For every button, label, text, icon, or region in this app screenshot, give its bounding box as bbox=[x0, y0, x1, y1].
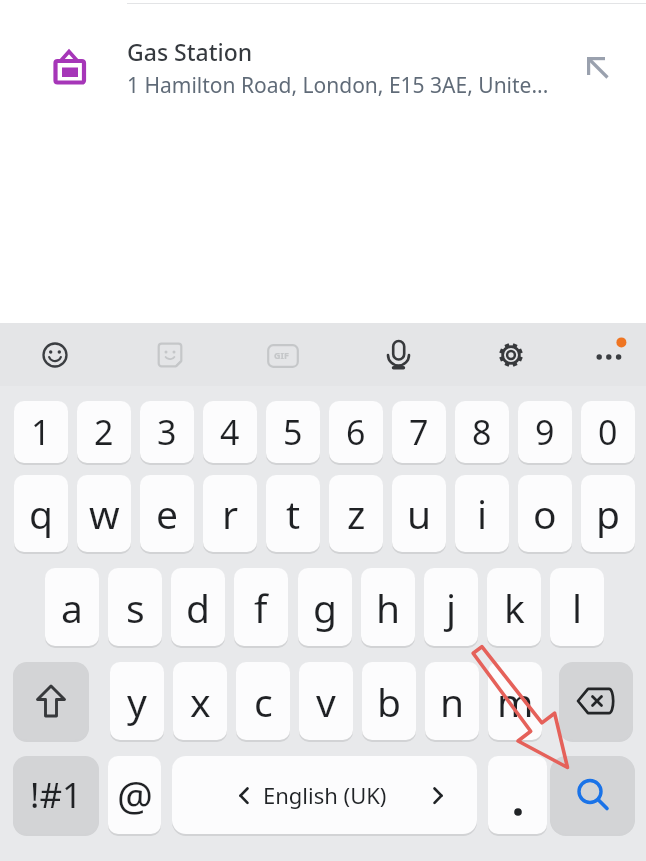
staticText: b bbox=[377, 675, 401, 728]
staticText: 4 bbox=[220, 409, 240, 455]
staticText: m bbox=[497, 675, 534, 728]
staticText: i bbox=[477, 487, 488, 540]
staticText: c bbox=[254, 675, 273, 728]
staticText: 1 bbox=[31, 409, 51, 455]
staticText: f bbox=[254, 581, 268, 634]
staticText: v bbox=[316, 675, 336, 728]
button[interactable]: t bbox=[266, 475, 320, 552]
button[interactable]: k bbox=[487, 568, 541, 646]
button[interactable] bbox=[583, 53, 611, 81]
staticText: 5 bbox=[283, 409, 303, 455]
staticText: 1 Hamilton Road, London, E15 3AE, Unite.… bbox=[127, 71, 549, 100]
staticText: n bbox=[440, 675, 465, 728]
button[interactable]: 5 bbox=[266, 401, 320, 463]
staticText: 0 bbox=[598, 409, 618, 455]
button[interactable] bbox=[40, 340, 70, 370]
button[interactable]: p bbox=[581, 475, 635, 552]
button[interactable]: n bbox=[425, 662, 479, 740]
staticText: o bbox=[533, 487, 557, 540]
button[interactable]: b bbox=[362, 662, 416, 740]
button[interactable] bbox=[559, 662, 633, 740]
button[interactable]: 9 bbox=[518, 401, 572, 463]
button[interactable]: c bbox=[236, 662, 290, 740]
staticText: w bbox=[89, 487, 120, 540]
button[interactable]: w bbox=[77, 475, 131, 552]
staticText: 3 bbox=[157, 409, 177, 455]
staticText: s bbox=[126, 581, 145, 634]
button[interactable]: u bbox=[392, 475, 446, 552]
button[interactable] bbox=[155, 340, 185, 370]
button[interactable]: r bbox=[203, 475, 257, 552]
staticText: English (UK) bbox=[263, 780, 387, 810]
button[interactable]: x bbox=[173, 662, 227, 740]
button[interactable] bbox=[172, 756, 477, 834]
button[interactable]: o bbox=[518, 475, 572, 552]
button[interactable]: @ bbox=[108, 756, 161, 834]
staticText: j bbox=[446, 581, 457, 634]
staticText: d bbox=[186, 581, 210, 634]
staticText: GIF bbox=[274, 349, 289, 361]
staticText: u bbox=[407, 487, 432, 540]
staticText: e bbox=[156, 487, 178, 540]
button[interactable]: 2 bbox=[77, 401, 131, 463]
button[interactable]: d bbox=[171, 568, 225, 646]
button[interactable]: 4 bbox=[203, 401, 257, 463]
button[interactable]: a bbox=[45, 568, 99, 646]
staticText: @ bbox=[117, 768, 153, 822]
button[interactable] bbox=[13, 662, 89, 740]
staticText: g bbox=[313, 581, 337, 634]
staticText: h bbox=[376, 581, 401, 634]
button[interactable]: h bbox=[361, 568, 415, 646]
button[interactable]: q bbox=[14, 475, 68, 552]
button[interactable]: s bbox=[108, 568, 162, 646]
staticText: Gas Station bbox=[127, 36, 253, 67]
button[interactable] bbox=[589, 330, 629, 366]
button[interactable]: v bbox=[299, 662, 353, 740]
staticText: p bbox=[596, 487, 620, 540]
button[interactable]: 0 bbox=[581, 401, 635, 463]
staticText: 2 bbox=[94, 409, 114, 455]
button[interactable]: y bbox=[110, 662, 164, 740]
staticText: y bbox=[127, 675, 147, 728]
button[interactable]: j bbox=[424, 568, 478, 646]
button[interactable] bbox=[550, 756, 635, 834]
button[interactable]: g bbox=[298, 568, 352, 646]
staticText: z bbox=[347, 487, 366, 540]
staticText: t bbox=[286, 487, 301, 540]
button[interactable]: 7 bbox=[392, 401, 446, 463]
staticText: 8 bbox=[472, 409, 492, 455]
button[interactable]: m bbox=[488, 662, 542, 740]
button[interactable] bbox=[267, 344, 299, 368]
button[interactable]: !#1 bbox=[13, 756, 99, 834]
staticText: 7 bbox=[409, 409, 429, 455]
button[interactable]: 3 bbox=[140, 401, 194, 463]
staticText: 6 bbox=[346, 409, 366, 455]
button[interactable]: e bbox=[140, 475, 194, 552]
button[interactable] bbox=[488, 756, 547, 834]
button[interactable]: z bbox=[329, 475, 383, 552]
staticText: !#1 bbox=[30, 771, 83, 819]
button[interactable]: f bbox=[234, 568, 288, 646]
staticText: x bbox=[190, 675, 211, 728]
staticText: k bbox=[504, 581, 525, 634]
button[interactable]: l bbox=[550, 568, 604, 646]
staticText: a bbox=[61, 581, 83, 634]
button[interactable]: 1 bbox=[14, 401, 68, 463]
button[interactable]: 6 bbox=[329, 401, 383, 463]
button[interactable]: 8 bbox=[455, 401, 509, 463]
button[interactable] bbox=[497, 341, 525, 369]
staticText: l bbox=[572, 581, 583, 634]
button[interactable] bbox=[383, 338, 414, 372]
staticText: 9 bbox=[535, 409, 555, 455]
staticText: q bbox=[29, 487, 53, 540]
staticText: r bbox=[222, 487, 239, 540]
button[interactable]: i bbox=[455, 475, 509, 552]
